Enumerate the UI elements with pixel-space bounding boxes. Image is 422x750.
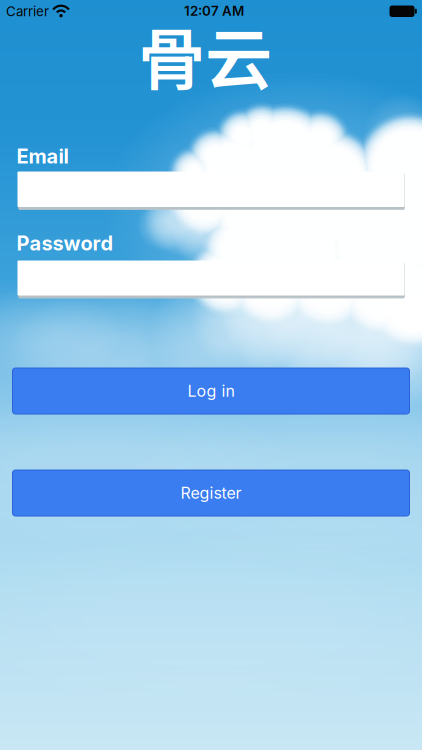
staticText: Password bbox=[16, 231, 113, 255]
button[interactable]: Register bbox=[12, 470, 409, 516]
staticText: Register bbox=[180, 484, 241, 502]
staticText: Email bbox=[16, 144, 68, 168]
staticText: 骨云 bbox=[138, 6, 272, 104]
staticText: Carrier bbox=[6, 3, 49, 19]
staticText: 12:07 AM bbox=[184, 3, 244, 19]
staticText: Log in bbox=[187, 382, 234, 400]
button[interactable]: Password bbox=[17, 260, 404, 295]
button[interactable]: Log in bbox=[12, 368, 409, 414]
